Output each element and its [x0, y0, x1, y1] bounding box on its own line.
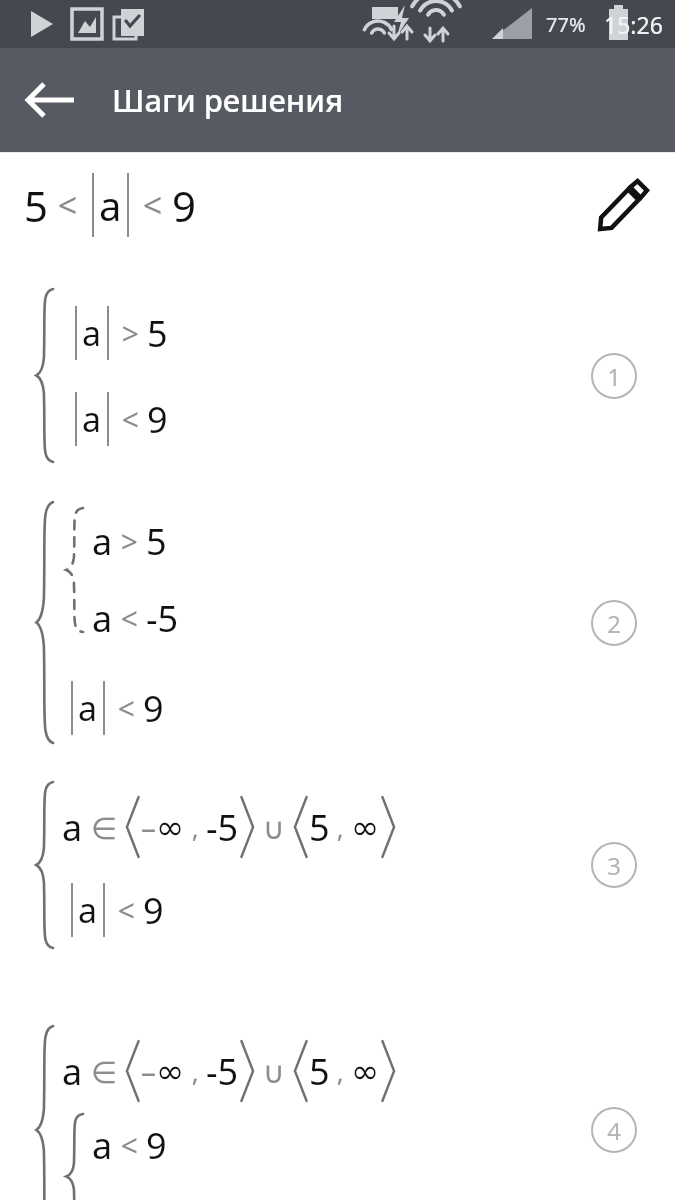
staticText: ,: [185, 810, 206, 845]
staticText: >: [114, 313, 147, 354]
staticText: ∈: [83, 807, 125, 848]
staticText: ∪: [255, 807, 293, 848]
button[interactable]: a: [0, 781, 675, 949]
button[interactable]: a: [0, 501, 675, 744]
button[interactable]: Back: [22, 71, 80, 129]
staticText: <: [49, 182, 87, 228]
staticText: 3: [607, 849, 621, 882]
button[interactable]: a: [0, 1025, 675, 1200]
staticText: ,: [185, 1054, 206, 1089]
staticText: 5: [24, 177, 49, 234]
staticText: 15:26: [604, 9, 663, 40]
button[interactable]: Edit: [597, 179, 649, 231]
staticText: a: [82, 396, 102, 442]
staticText: 4: [607, 1114, 621, 1147]
staticText: –: [141, 807, 156, 848]
staticText: a: [62, 803, 83, 852]
staticText: <: [114, 399, 147, 440]
staticText: <: [110, 688, 143, 729]
staticText: -5: [206, 1047, 239, 1096]
staticText: –: [141, 1051, 156, 1092]
staticText: a: [82, 310, 102, 356]
staticText: 5: [147, 309, 168, 358]
staticText: 9: [143, 886, 164, 935]
staticText: a: [99, 178, 122, 232]
staticText: a: [78, 685, 98, 731]
staticText: 2: [607, 607, 621, 640]
staticText: >: [113, 521, 146, 562]
staticText: 9: [172, 177, 197, 234]
staticText: ∞: [156, 807, 185, 847]
staticText: a: [62, 1047, 83, 1096]
staticText: Шаги решения: [112, 79, 344, 121]
staticText: ,: [330, 1054, 351, 1089]
staticText: 77%: [546, 11, 586, 38]
staticText: ∪: [255, 1051, 293, 1092]
staticText: 9: [147, 395, 168, 444]
staticText: ,: [330, 810, 351, 845]
staticText: <: [110, 890, 143, 931]
staticText: 1: [607, 360, 621, 393]
staticText: 9: [143, 684, 164, 733]
staticText: -5: [206, 803, 239, 852]
staticText: 5: [146, 517, 167, 566]
staticText: ∈: [83, 1051, 125, 1092]
staticText: <: [134, 182, 172, 228]
staticText: a: [78, 887, 98, 933]
staticText: -5: [146, 594, 179, 643]
staticText: 9: [146, 1121, 167, 1170]
staticText: a: [92, 1121, 113, 1170]
staticText: 5: [309, 1047, 330, 1096]
staticText: ∞: [156, 1051, 185, 1091]
staticText: <: [113, 598, 146, 639]
staticText: a: [92, 517, 113, 566]
staticText: ∞: [351, 1051, 380, 1091]
staticText: 5: [309, 803, 330, 852]
button[interactable]: a: [0, 288, 675, 463]
staticText: <: [113, 1125, 146, 1166]
button[interactable]: 5: [0, 153, 675, 257]
staticText: ∞: [351, 807, 380, 847]
staticText: a: [92, 594, 113, 643]
